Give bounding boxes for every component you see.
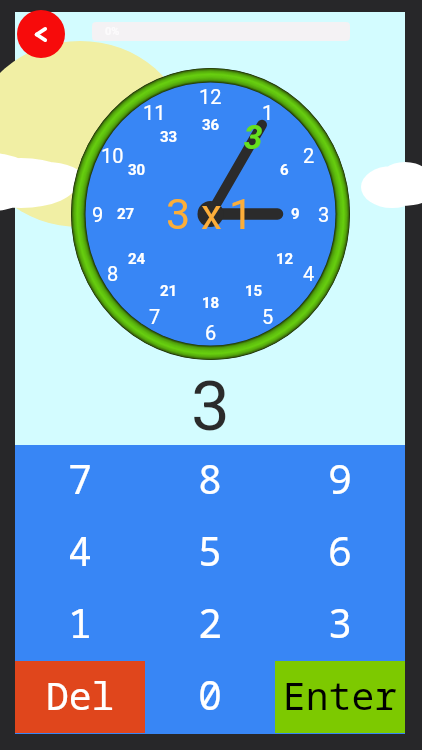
staticText: 1 [68, 595, 92, 649]
staticText: 30 [128, 161, 146, 179]
staticText: 8 [107, 262, 119, 285]
button[interactable]: Del [15, 661, 145, 733]
staticText: 5 [262, 305, 274, 328]
staticText: 1 [262, 101, 274, 124]
staticText: 3 [244, 118, 263, 157]
staticText: 1 [229, 189, 254, 239]
staticText: 2 [198, 595, 222, 649]
button[interactable]: 0 [145, 661, 275, 733]
button[interactable]: 1 [15, 589, 145, 661]
button[interactable]: 7 [15, 445, 145, 517]
staticText: 2 [303, 144, 315, 167]
staticText: x [201, 190, 222, 239]
staticText: 27 [117, 205, 135, 223]
staticText: 3 [166, 189, 191, 239]
staticText: 9 [328, 451, 352, 505]
staticText: 4 [303, 262, 315, 285]
staticText: 3 [318, 203, 330, 226]
staticText: 15 [245, 282, 263, 300]
staticText: 5 [198, 523, 222, 577]
button[interactable]: 5 [145, 517, 275, 589]
staticText: Del [46, 669, 115, 721]
staticText: 6 [328, 523, 352, 577]
staticText: 18 [202, 294, 220, 312]
staticText: 12 [199, 85, 222, 108]
staticText: 10 [101, 144, 124, 167]
button[interactable]: 3 [275, 589, 405, 661]
staticText: 9 [92, 203, 104, 226]
staticText: 0 [198, 667, 222, 721]
staticText: 0% [105, 25, 120, 38]
staticText: 9 [291, 205, 300, 223]
staticText: 3 [191, 366, 230, 436]
button[interactable]: 4 [15, 517, 145, 589]
button[interactable]: 6 [275, 517, 405, 589]
staticText: 4 [68, 523, 92, 577]
staticText: 36 [202, 116, 220, 134]
staticText: 11 [143, 101, 166, 124]
staticText: Enter [283, 669, 398, 721]
staticText: 6 [280, 161, 289, 179]
staticText: 33 [160, 128, 178, 146]
button[interactable]: 9 [275, 445, 405, 517]
button[interactable]: 8 [145, 445, 275, 517]
staticText: 8 [198, 451, 222, 505]
staticText: 3 [328, 595, 352, 649]
staticText: 6 [205, 321, 217, 344]
button[interactable]: Back [17, 10, 65, 58]
staticText: 12 [276, 250, 294, 268]
staticText: 7 [68, 451, 92, 505]
button[interactable]: Enter [275, 661, 405, 733]
staticText: 24 [128, 250, 146, 268]
staticText: 7 [149, 305, 161, 328]
button[interactable]: 2 [145, 589, 275, 661]
staticText: 21 [160, 282, 178, 300]
